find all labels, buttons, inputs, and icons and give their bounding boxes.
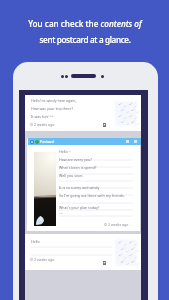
- staticText: sent postcard at a glance.: [39, 34, 131, 45]
- button[interactable]: Hello: [25, 234, 141, 270]
- staticText: Hello: [31, 239, 40, 244]
- other: Close: [30, 140, 34, 144]
- staticText: What's your plan today?: [59, 205, 100, 210]
- staticText: You can check the contents of: [28, 18, 142, 29]
- staticText: What's been is spend?: [59, 165, 97, 170]
- staticText: Well you soon.: [59, 173, 84, 178]
- staticText: 2 weeks ago: [108, 222, 129, 227]
- staticText: 2 weeks ago: [34, 122, 55, 127]
- staticText: Postcard: [40, 139, 54, 144]
- staticText: It was fun! ^^: [31, 114, 54, 119]
- staticText: 2 weeks ago: [34, 257, 55, 262]
- button[interactable]: Hello! its windy here again,: [25, 95, 141, 131]
- button[interactable]: Close: [27, 138, 140, 231]
- staticText: It is so sunny and windy: [59, 185, 100, 190]
- staticText: Hello! its windy here again,: [31, 98, 77, 103]
- other: Reply: [35, 140, 39, 144]
- staticText: ~~: [59, 211, 64, 216]
- staticText: How are every you?: [59, 157, 92, 162]
- staticText: So I'm going out there with my friends.: [59, 193, 125, 198]
- staticText: Hello ~: [59, 149, 71, 154]
- staticText: How was your trip there?: [31, 106, 74, 111]
